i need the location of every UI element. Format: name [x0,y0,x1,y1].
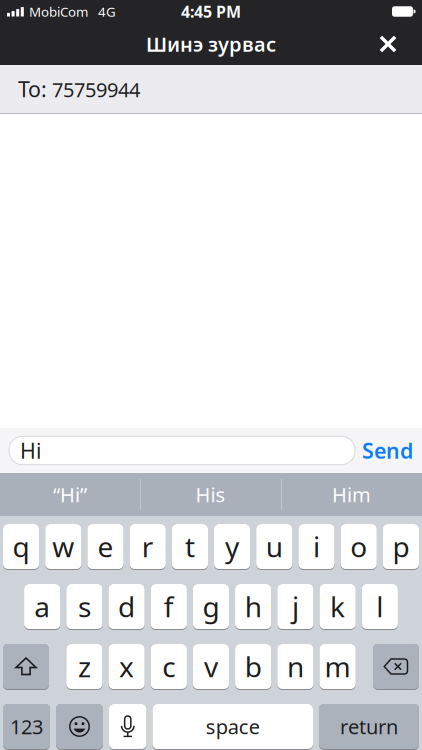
staticText: 4G [98,3,116,20]
staticText: 4:45 PM [181,1,241,22]
staticText: u [266,528,283,565]
button[interactable]: g [193,584,229,630]
button[interactable]: n [277,644,313,690]
button[interactable]: z [66,644,102,690]
staticText: Send [362,436,413,465]
button[interactable]: Emoji [56,704,103,750]
staticText: 75759944 [52,76,140,103]
staticText: i [313,528,320,565]
staticText: MobiCom [29,3,88,20]
button[interactable]: His [140,473,281,516]
button[interactable]: e [87,524,124,570]
button[interactable]: a [24,584,60,630]
staticText: c [162,648,175,685]
staticText: z [78,648,91,685]
staticText: Him [332,481,371,508]
staticText: r [142,528,154,565]
button[interactable]: c [151,644,187,690]
staticText: k [330,588,345,625]
button[interactable]: p [383,524,419,570]
button[interactable]: Message [9,437,355,464]
staticText: 123 [10,713,43,740]
button[interactable]: Delete [373,644,419,690]
staticText: f [164,588,174,625]
button[interactable]: space [152,704,313,750]
staticText: y [225,528,239,565]
staticText: q [13,528,30,565]
button[interactable]: w [45,524,81,570]
button[interactable]: o [341,524,377,570]
button[interactable]: l [362,584,398,630]
button[interactable]: b [235,644,271,690]
staticText: x [119,648,134,685]
button[interactable]: Send [362,436,413,465]
staticText: a [34,588,50,625]
button[interactable]: To: [0,65,422,114]
staticText: n [287,648,304,685]
staticText: return [340,713,398,740]
button[interactable]: Him [281,473,422,516]
button[interactable]: j [277,584,313,630]
button[interactable]: d [108,584,145,630]
button[interactable]: r [130,524,166,570]
button[interactable]: f [151,584,187,630]
staticText: j [292,588,299,625]
staticText: s [78,588,91,625]
button[interactable]: Dictate [109,704,146,750]
button[interactable]: k [319,584,356,630]
button[interactable]: y [214,524,250,570]
staticText: b [245,648,262,685]
staticText: m [325,648,351,685]
button[interactable]: u [256,524,292,570]
button[interactable]: x [108,644,145,690]
button[interactable]: s [66,584,102,630]
button[interactable]: v [193,644,229,690]
staticText: l [376,588,383,625]
staticText: e [97,528,113,565]
staticText: t [185,528,195,565]
staticText: His [195,481,225,508]
button[interactable]: Shift [3,644,49,690]
staticText: g [202,588,219,625]
staticText: Шинэ зурвас [146,31,276,57]
button[interactable]: Close [370,24,406,64]
button[interactable]: return [319,704,419,750]
button[interactable]: “Hi” [0,473,140,516]
button[interactable]: m [319,644,356,690]
staticText: To: [18,75,47,103]
staticText: space [206,713,260,740]
button[interactable]: t [172,524,208,570]
staticText: h [245,588,262,625]
button[interactable]: h [235,584,271,630]
staticText: w [52,528,74,565]
staticText: o [350,528,367,565]
staticText: “Hi” [53,481,87,508]
staticText: d [118,588,135,625]
staticText: Hi [20,436,42,465]
button[interactable]: 123 [3,704,50,750]
staticText: v [204,648,218,685]
button[interactable]: q [3,524,39,570]
staticText: p [392,528,409,565]
button[interactable]: i [298,524,335,570]
